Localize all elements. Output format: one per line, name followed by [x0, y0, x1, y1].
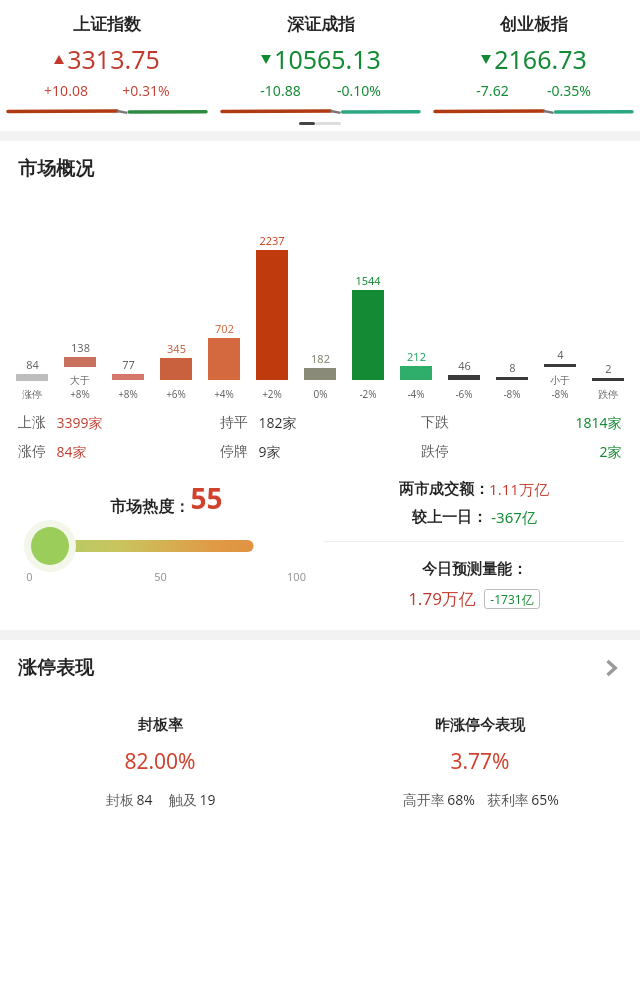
- other: More limit-up details: [600, 657, 622, 679]
- staticText: -1731亿: [490, 591, 534, 607]
- staticText: 获利率: [485, 790, 531, 809]
- staticText: 跌停: [598, 388, 618, 401]
- staticText: 1814家: [575, 413, 622, 432]
- staticText: 82.00%: [124, 747, 196, 776]
- staticText: -10.88: [260, 81, 301, 100]
- staticText: 84: [26, 357, 39, 372]
- button[interactable]: 创业板指: [427, 0, 640, 116]
- staticText: 2: [605, 361, 612, 376]
- staticText: 两市成交额：: [399, 480, 489, 499]
- staticText: -6%: [455, 387, 473, 401]
- staticText: 上涨: [18, 414, 46, 432]
- staticText: 大于: [70, 374, 90, 387]
- staticText: 65%: [531, 790, 559, 809]
- staticText: 创业板指: [500, 14, 568, 35]
- staticText: 68%: [447, 790, 475, 809]
- staticText: +0.31%: [122, 81, 170, 100]
- staticText: 高开率: [401, 790, 447, 809]
- staticText: 2237: [259, 233, 285, 248]
- staticText: 涨停: [18, 443, 46, 461]
- staticText: 今日预测量能：: [422, 560, 527, 579]
- staticText: 84家: [56, 442, 87, 461]
- staticText: +8%: [70, 387, 90, 401]
- staticText: -7.62: [476, 81, 509, 100]
- staticText: 下跌: [421, 414, 449, 432]
- staticText: 0: [26, 569, 33, 584]
- staticText: 较上一日：: [412, 508, 487, 527]
- staticText: 1544: [355, 273, 381, 288]
- staticText: 1.79万亿: [408, 587, 476, 610]
- staticText: 1.11万亿: [489, 479, 549, 499]
- staticText: 上证指数: [73, 14, 141, 35]
- staticText: 50: [154, 569, 167, 584]
- staticText: 跌停: [421, 443, 449, 461]
- staticText: 小于: [550, 374, 570, 387]
- staticText: 持平: [220, 414, 248, 432]
- staticText: 46: [458, 358, 471, 373]
- staticText: 0%: [313, 387, 328, 401]
- staticText: 3399家: [56, 413, 103, 432]
- staticText: 市场热度：: [110, 497, 190, 517]
- staticText: -367亿: [491, 507, 537, 527]
- staticText: +6%: [166, 387, 186, 401]
- staticText: 10565.13: [274, 42, 381, 76]
- staticText: 3.77%: [450, 747, 510, 776]
- staticText: 触及: [167, 790, 199, 809]
- staticText: 昨涨停今表现: [435, 716, 525, 735]
- button[interactable]: 上证指数: [0, 0, 214, 116]
- staticText: 77: [122, 357, 135, 372]
- staticText: +8%: [118, 387, 138, 401]
- staticText: 212: [407, 349, 426, 364]
- staticText: +2%: [262, 387, 282, 401]
- staticText: 涨停: [22, 388, 42, 401]
- staticText: 84: [136, 790, 153, 809]
- staticText: +10.08: [44, 81, 88, 100]
- staticText: 2家: [599, 442, 622, 461]
- staticText: +4%: [214, 387, 234, 401]
- staticText: 19: [199, 790, 216, 809]
- staticText: 182家: [258, 413, 297, 432]
- staticText: 3313.75: [67, 42, 160, 76]
- staticText: -2%: [359, 387, 377, 401]
- button[interactable]: 涨停表现: [0, 640, 640, 696]
- staticText: 4: [557, 347, 564, 362]
- staticText: 深证成指: [287, 14, 355, 35]
- staticText: 9家: [258, 442, 281, 461]
- staticText: -0.35%: [547, 81, 591, 100]
- staticText: 702: [215, 321, 234, 336]
- staticText: 182: [311, 351, 330, 366]
- staticText: -8%: [551, 387, 569, 401]
- staticText: 2166.73: [494, 42, 587, 76]
- staticText: -4%: [407, 387, 425, 401]
- staticText: 345: [167, 341, 186, 356]
- staticText: -0.10%: [337, 81, 381, 100]
- staticText: 封板: [104, 790, 136, 809]
- staticText: 138: [71, 340, 90, 355]
- button[interactable]: 深证成指: [214, 0, 427, 116]
- staticText: 市场概况: [18, 157, 94, 181]
- staticText: 8: [509, 360, 516, 375]
- staticText: 停牌: [220, 443, 248, 461]
- staticText: 涨停表现: [18, 656, 94, 680]
- staticText: 100: [287, 569, 306, 584]
- staticText: 55: [190, 479, 223, 517]
- staticText: 封板率: [138, 716, 183, 735]
- staticText: -8%: [503, 387, 521, 401]
